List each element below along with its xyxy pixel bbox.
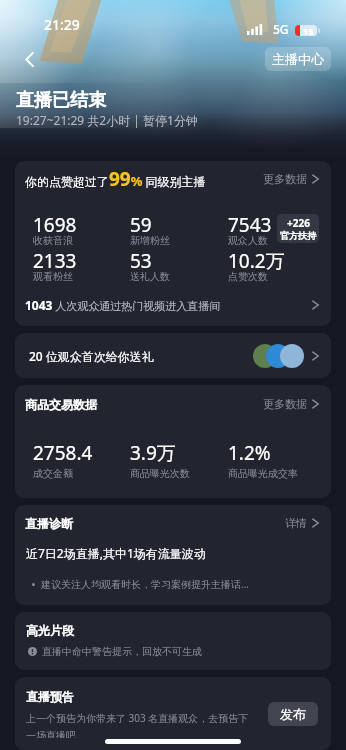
staticText: 15 — [303, 25, 314, 36]
button[interactable]: 1043 人次观众通过热门视频进入直播间 — [15, 283, 331, 326]
staticText: 7543 — [228, 212, 272, 234]
staticText: 点赞次数 — [228, 270, 268, 283]
button[interactable]: 直播诊断 — [15, 505, 331, 541]
staticText: 近7日2场直播,其中1场有流量波动 — [26, 545, 206, 561]
staticText: 19:27~21:29 共2小时 | 暂停1分钟 — [16, 112, 198, 128]
staticText: 21:29 — [44, 15, 80, 34]
staticText: 直播预告 — [26, 689, 74, 704]
staticText: +226 — [287, 216, 310, 230]
button[interactable]: Back — [13, 43, 45, 75]
staticText: 发布 — [280, 706, 306, 722]
staticText: 你的点赞超过了99% 同级别主播 — [25, 166, 206, 192]
staticText: 主播中心 — [272, 51, 324, 67]
staticText: 商品交易数据 — [25, 397, 97, 412]
staticText: 53 — [130, 248, 152, 270]
staticText: 上一个预告为你带来了 303 名直播观众，去预告下一场直播吧 — [26, 711, 258, 738]
staticText: 观看粉丝 — [33, 270, 73, 283]
staticText: 1698 — [33, 212, 77, 234]
staticText: 商品曝光次数 — [130, 467, 190, 480]
staticText: 商品曝光成交率 — [228, 467, 298, 480]
staticText: 直播已结束 — [16, 89, 106, 112]
staticText: 观众人数 — [228, 234, 268, 247]
staticText: 送礼人数 — [130, 270, 170, 283]
staticText: 5G — [273, 21, 289, 37]
button[interactable]: 高光片段 — [0, 612, 346, 670]
staticText: 建议关注人均观看时长，学习案例提升主播话... — [41, 577, 250, 591]
staticText: 详情 — [285, 516, 307, 530]
staticText: 1043 人次观众通过热门视频进入直播间 — [25, 297, 221, 313]
staticText: 1.2% — [228, 440, 271, 462]
button[interactable]: 发布 — [268, 702, 318, 726]
staticText: 2133 — [33, 248, 77, 270]
staticText: 直播诊断 — [25, 516, 73, 531]
staticText: 20 位观众首次给你送礼 — [29, 348, 154, 364]
staticText: 3.9万 — [130, 440, 176, 462]
button[interactable]: 主播中心 — [265, 47, 331, 71]
staticText: 成交金额 — [33, 467, 73, 480]
staticText: 新增粉丝 — [130, 234, 170, 247]
staticText: 更多数据 — [263, 172, 307, 186]
button[interactable]: 20 位观众首次给你送礼 — [15, 333, 331, 378]
staticText: 更多数据 — [263, 397, 307, 411]
staticText: 10.2万 — [228, 248, 285, 270]
staticText: 高光片段 — [26, 623, 74, 638]
staticText: 59 — [130, 212, 152, 234]
button[interactable]: 商品交易数据 — [15, 385, 331, 423]
staticText: 直播中命中警告提示，回放不可生成 — [42, 645, 202, 658]
staticText: 官方扶持 — [280, 230, 316, 241]
staticText: 收获音浪 — [33, 234, 73, 247]
staticText: 2758.4 — [33, 440, 93, 462]
button[interactable]: 你的点赞超过了99% 同级别主播 — [15, 161, 331, 197]
